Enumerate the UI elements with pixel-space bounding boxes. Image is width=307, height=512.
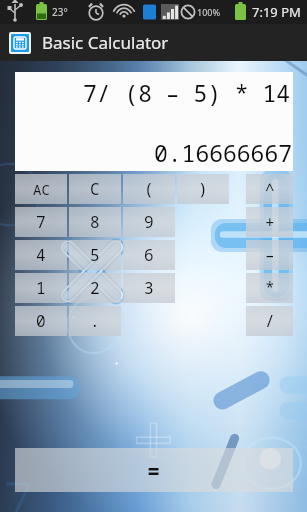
button[interactable]: = [15, 448, 293, 492]
button[interactable]: 1 [15, 273, 67, 303]
button[interactable]: 3 [123, 273, 175, 303]
button[interactable]: 7 [15, 207, 67, 237]
staticText: . [90, 310, 100, 332]
button[interactable]: AC [15, 174, 67, 204]
other: App icon [11, 34, 29, 52]
staticText: C [90, 178, 100, 200]
staticText: 2 [90, 277, 100, 299]
staticText: ^ [265, 178, 275, 200]
staticText: 7 [36, 211, 46, 233]
button[interactable]: ) [177, 174, 229, 204]
staticText: = [147, 455, 161, 485]
staticText: + [265, 211, 275, 233]
button[interactable]: 0 [15, 306, 67, 336]
staticText: 0 [36, 310, 46, 332]
staticText: 23° [52, 5, 68, 19]
staticText: 9 [144, 211, 154, 233]
staticText: 1 [36, 277, 46, 299]
staticText: AC [33, 180, 50, 199]
button[interactable]: 8 [69, 207, 121, 237]
staticText: / [265, 310, 275, 332]
button[interactable]: 9 [123, 207, 175, 237]
button[interactable]: 2 [69, 273, 121, 303]
button[interactable]: ( [123, 174, 175, 204]
staticText: * [265, 277, 275, 299]
staticText: 7/ (8 – 5) * 14 [82, 77, 290, 108]
button[interactable]: – [246, 240, 293, 270]
button[interactable]: 6 [123, 240, 175, 270]
button[interactable]: ^ [246, 174, 293, 204]
button[interactable]: . [69, 306, 121, 336]
staticText: 6 [144, 244, 154, 266]
staticText: 0.16666667 [153, 137, 292, 168]
staticText: 7:19 PM [252, 3, 301, 21]
button[interactable]: / [246, 306, 293, 336]
staticText: 8 [90, 211, 100, 233]
button[interactable]: * [246, 273, 293, 303]
staticText: 5 [90, 244, 100, 266]
staticText: 4 [36, 244, 46, 266]
button[interactable]: + [246, 207, 293, 237]
button[interactable]: 4 [15, 240, 67, 270]
staticText: Basic Calculator [42, 31, 169, 54]
staticText: – [265, 244, 275, 266]
staticText: 3 [144, 277, 154, 299]
staticText: ( [144, 178, 154, 200]
staticText: ) [198, 178, 208, 200]
button[interactable]: C [69, 174, 121, 204]
button[interactable]: 5 [69, 240, 121, 270]
staticText: 100% [197, 6, 221, 18]
